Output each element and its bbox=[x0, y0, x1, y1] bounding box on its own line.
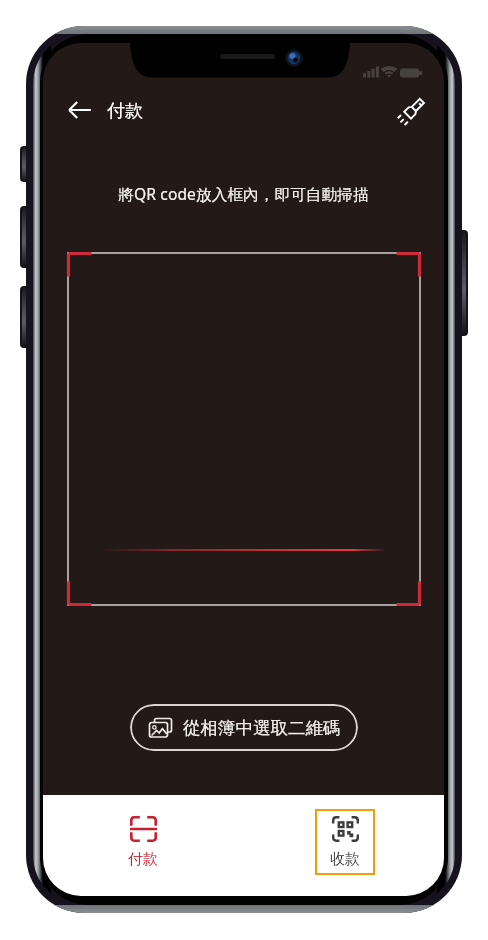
staticText: 付款 bbox=[107, 100, 143, 123]
staticText: 付款 bbox=[128, 850, 158, 869]
button[interactable]: 從相簿中選取二維碼 bbox=[130, 704, 358, 751]
button[interactable]: 付款 bbox=[107, 803, 179, 885]
staticText: 將QR code放入框內，即可自動掃描 bbox=[43, 183, 444, 204]
staticText: 從相簿中選取二維碼 bbox=[183, 717, 341, 739]
button[interactable]: Back bbox=[59, 90, 101, 132]
staticText: 收款 bbox=[330, 850, 360, 869]
button[interactable]: Flashlight bbox=[390, 88, 436, 134]
button[interactable]: 收款 bbox=[315, 809, 375, 875]
